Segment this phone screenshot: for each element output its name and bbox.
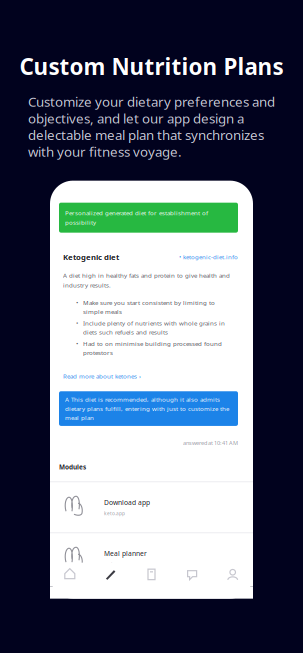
staticText: keto.app bbox=[104, 510, 125, 516]
staticText: Make sure you start consistent by limiti… bbox=[83, 298, 215, 316]
staticText: Custom Nutrition Plans bbox=[19, 51, 283, 81]
staticText: • ketogenic-diet.info bbox=[179, 253, 238, 261]
staticText: Ketogenic diet bbox=[63, 252, 119, 262]
staticText: • bbox=[76, 339, 78, 348]
staticText: Download app bbox=[104, 498, 150, 507]
button[interactable]: Saved bbox=[172, 563, 212, 587]
staticText: answered at 10:41 AM bbox=[183, 439, 238, 446]
button[interactable]: Home bbox=[50, 563, 91, 587]
staticText: Had to on minimise building processed fo… bbox=[83, 339, 222, 357]
staticText: • bbox=[76, 319, 78, 327]
button[interactable]: Download app bbox=[59, 482, 238, 532]
staticText: A This diet is recommended, although it … bbox=[65, 395, 229, 422]
staticText: Customize your dietary preferences and o… bbox=[28, 92, 275, 161]
button[interactable]: Compose bbox=[91, 563, 131, 587]
button[interactable]: Library bbox=[131, 563, 172, 587]
staticText: Personalized generated diet for establis… bbox=[65, 209, 208, 226]
button[interactable]: Profile bbox=[212, 563, 253, 587]
staticText: Meal planner bbox=[104, 549, 147, 558]
button[interactable]: Meal planner bbox=[59, 533, 238, 583]
staticText: Read more about ketones › bbox=[63, 372, 141, 380]
staticText: Modules bbox=[59, 462, 86, 471]
staticText: A diet high in healthy fats and protein … bbox=[63, 271, 230, 289]
staticText: • bbox=[76, 298, 78, 307]
staticText: Include plenty of nutrients with whole g… bbox=[83, 319, 225, 336]
